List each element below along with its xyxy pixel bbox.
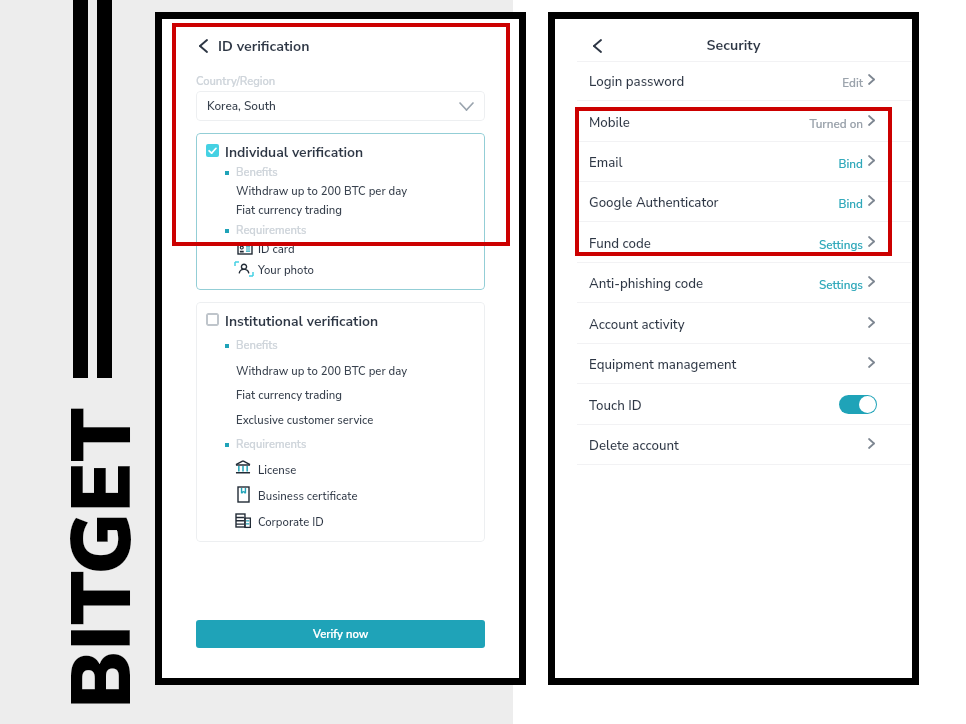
staticText: Turned on xyxy=(555,116,863,132)
button[interactable]: Individual verification xyxy=(196,133,485,290)
button[interactable]: Touch ID xyxy=(555,385,912,425)
button[interactable]: Institutional verification xyxy=(196,302,485,542)
button[interactable]: Google Authenticator xyxy=(555,182,912,222)
staticText: Corporate ID xyxy=(258,515,324,530)
staticText: Equipment management xyxy=(589,356,737,374)
button[interactable]: Back xyxy=(586,35,608,57)
staticText: Benefits xyxy=(236,338,278,353)
staticText: Settings xyxy=(555,277,863,293)
button[interactable]: Equipment management xyxy=(555,344,912,384)
staticText: Bind xyxy=(555,156,863,172)
staticText: Touch ID xyxy=(589,397,642,415)
staticText: BITGET xyxy=(46,408,159,709)
staticText: ID card xyxy=(258,242,295,257)
staticText: License xyxy=(258,463,297,478)
button[interactable]: Delete account xyxy=(555,425,912,465)
staticText: Individual verification xyxy=(225,143,364,162)
staticText: Withdraw up to 200 BTC per day xyxy=(236,184,408,199)
staticText: Google Authenticator xyxy=(589,194,719,212)
staticText: Fiat currency trading xyxy=(236,203,342,218)
staticText: Your photo xyxy=(258,263,314,278)
staticText: Settings xyxy=(555,237,863,253)
staticText: Fund code xyxy=(589,235,651,253)
button[interactable]: Mobile xyxy=(555,102,912,142)
button[interactable]: Back xyxy=(192,35,214,57)
staticText: Delete account xyxy=(589,437,679,455)
staticText: Business certificate xyxy=(258,489,358,504)
staticText: Benefits xyxy=(236,165,278,180)
staticText: Withdraw up to 200 BTC per day xyxy=(236,364,408,379)
button[interactable]: Email xyxy=(555,142,912,182)
button[interactable]: Anti-phishing code xyxy=(555,263,912,303)
staticText: Bind xyxy=(555,196,863,212)
staticText: Country/Region xyxy=(196,74,276,89)
staticText: Email xyxy=(589,154,623,172)
staticText: Exclusive customer service xyxy=(236,413,374,428)
staticText: Edit xyxy=(555,75,863,91)
staticText: Account activity xyxy=(589,316,685,334)
button[interactable]: Login password xyxy=(555,61,912,101)
button[interactable]: Fund code xyxy=(555,223,912,263)
button[interactable]: Account activity xyxy=(555,304,912,344)
staticText: ID verification xyxy=(218,37,310,56)
staticText: Verify now xyxy=(313,627,369,642)
staticText: Requirements xyxy=(236,223,307,238)
staticText: Fiat currency trading xyxy=(236,388,342,403)
button[interactable]: Verify now xyxy=(196,620,485,648)
staticText: Institutional verification xyxy=(225,312,379,331)
staticText: Security xyxy=(555,36,912,55)
staticText: Anti-phishing code xyxy=(589,275,704,293)
staticText: Requirements xyxy=(236,437,307,452)
staticText: Login password xyxy=(589,73,685,91)
staticText: Mobile xyxy=(589,114,630,132)
staticText: Korea, South xyxy=(207,98,276,114)
button[interactable]: Korea, South xyxy=(196,91,485,121)
